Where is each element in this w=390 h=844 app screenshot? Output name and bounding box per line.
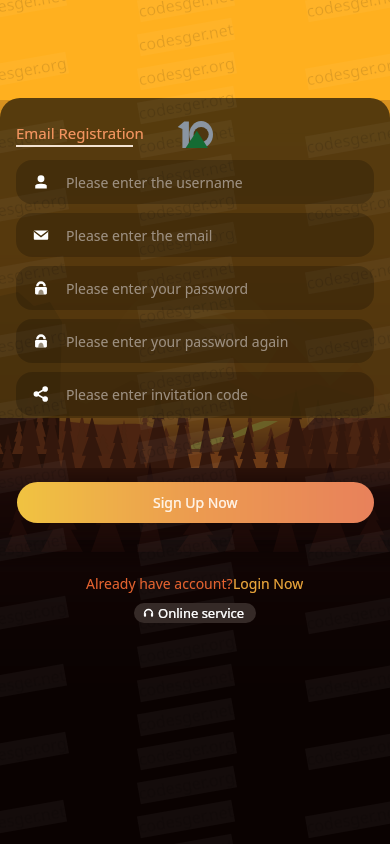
staticText: codesger.net xyxy=(305,800,390,838)
staticText: Login Now xyxy=(233,574,304,593)
button[interactable]: Online service xyxy=(134,603,256,623)
staticText: Please enter your password xyxy=(66,279,249,298)
button[interactable]: Already have account? xyxy=(86,574,304,593)
staticText: codesger.org xyxy=(0,460,69,498)
staticText: Please enter the username xyxy=(66,173,243,192)
staticText: codesger.net xyxy=(305,392,390,430)
staticText: codesger.net xyxy=(137,392,235,430)
staticText: codesger.net xyxy=(137,426,235,464)
staticText: codesger.org xyxy=(137,732,237,770)
staticText: codesger.net xyxy=(137,18,235,56)
button[interactable]: Sign Up Now xyxy=(17,482,374,523)
staticText: Please enter invitation code xyxy=(66,385,249,404)
staticText: Please enter the email xyxy=(66,226,213,245)
staticText: codesger.org xyxy=(137,358,237,396)
staticText: codesger.net xyxy=(0,256,67,294)
staticText: codesger.org xyxy=(305,460,390,498)
staticText: codesger.org xyxy=(0,324,69,362)
staticText: codesger.org xyxy=(137,324,237,362)
staticText: codesger.net xyxy=(137,698,235,736)
staticText: codesger.org xyxy=(0,732,69,770)
staticText: codesger.net xyxy=(137,834,235,844)
staticText: codesger.org xyxy=(137,222,237,260)
staticText: codesger.org xyxy=(137,630,237,668)
staticText: codesger.net xyxy=(305,528,390,566)
button[interactable]: Please enter your password xyxy=(16,266,374,310)
button[interactable]: Please enter the email xyxy=(16,213,374,257)
staticText: codesger.net xyxy=(0,120,67,158)
staticText: codesger.net xyxy=(0,528,67,566)
button[interactable]: Please enter the username xyxy=(16,160,374,204)
staticText: Sign Up Now xyxy=(153,493,238,512)
staticText: codesger.net xyxy=(0,0,67,22)
staticText: codesger.net xyxy=(137,562,235,600)
staticText: codesger.net xyxy=(0,664,67,702)
staticText: codesger.org xyxy=(0,596,69,634)
staticText: Email Registration xyxy=(16,123,144,143)
staticText: codesger.net xyxy=(0,800,67,838)
staticText: codesger.net xyxy=(137,256,235,294)
staticText: codesger.net xyxy=(305,256,390,294)
staticText: codesger.org xyxy=(305,732,390,770)
staticText: codesger.org xyxy=(137,460,237,498)
staticText: codesger.org xyxy=(137,766,237,804)
staticText: codesger.net xyxy=(137,800,235,838)
staticText: codesger.net xyxy=(305,664,390,702)
staticText: Please enter your password again xyxy=(66,332,289,351)
staticText: codesger.net xyxy=(137,0,235,22)
staticText: codesger.org xyxy=(137,596,237,634)
staticText: codesger.net xyxy=(305,120,390,158)
staticText: codesger.net xyxy=(137,290,235,328)
staticText: codesger.org xyxy=(137,52,237,90)
staticText: codesger.org xyxy=(305,596,390,634)
staticText: codesger.net xyxy=(137,154,235,192)
staticText: codesger.org xyxy=(305,188,390,226)
staticText: codesger.net xyxy=(0,392,67,430)
staticText: codesger.net xyxy=(137,664,235,702)
staticText: codesger.net xyxy=(305,0,390,22)
staticText: codesger.org xyxy=(0,188,69,226)
staticText: codesger.net xyxy=(137,120,235,158)
button[interactable]: Please enter your password again xyxy=(16,319,374,363)
button[interactable]: Please enter invitation code xyxy=(16,372,374,416)
staticText: codesger.org xyxy=(305,324,390,362)
staticText: Already have account? xyxy=(86,574,233,593)
staticText: codesger.net xyxy=(137,528,235,566)
staticText: codesger.org xyxy=(137,188,237,226)
staticText: codesger.org xyxy=(137,86,237,124)
staticText: codesger.org xyxy=(0,52,69,90)
staticText: codesger.org xyxy=(137,494,237,532)
staticText: codesger.org xyxy=(305,52,390,90)
staticText: Online service xyxy=(158,604,245,622)
